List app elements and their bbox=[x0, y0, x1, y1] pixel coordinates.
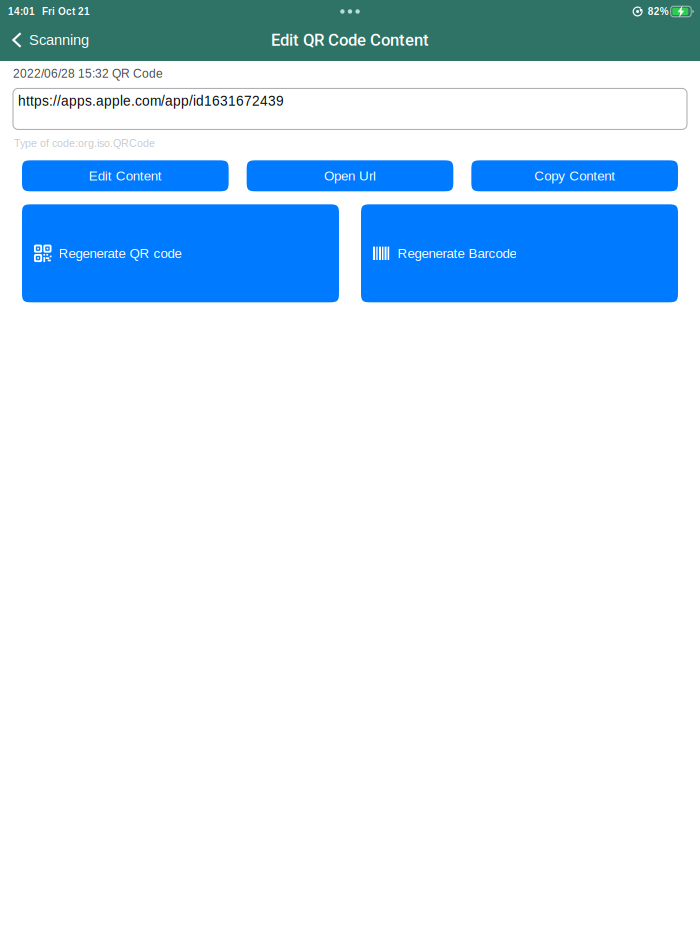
staticText: Open Url bbox=[324, 168, 376, 183]
button[interactable]: Regenerate QR code bbox=[22, 204, 339, 302]
button[interactable]: Copy Content bbox=[471, 160, 678, 191]
button[interactable]: Edit Content bbox=[22, 160, 229, 191]
staticText: Scanning bbox=[29, 32, 89, 48]
staticText: Regenerate QR code bbox=[58, 246, 181, 261]
staticText: Type of code:org.iso.QRCode bbox=[14, 137, 155, 149]
staticText: Fri Oct 21 bbox=[42, 6, 90, 17]
staticText: Regenerate Barcode bbox=[397, 246, 516, 261]
staticText: Edit QR Code Content bbox=[271, 30, 429, 50]
button[interactable]: Scanning bbox=[0, 28, 89, 56]
staticText: Copy Content bbox=[534, 168, 615, 183]
staticText: https://apps.apple.com/app/id1631672439 bbox=[18, 93, 284, 109]
button[interactable]: Regenerate Barcode bbox=[361, 204, 678, 302]
staticText: 14:01 bbox=[8, 6, 35, 17]
staticText: Edit Content bbox=[89, 168, 162, 183]
button[interactable]: Open Url bbox=[247, 160, 453, 191]
staticText: 2022/06/28 15:32 QR Code bbox=[13, 67, 163, 80]
staticText: 82% bbox=[648, 6, 669, 17]
